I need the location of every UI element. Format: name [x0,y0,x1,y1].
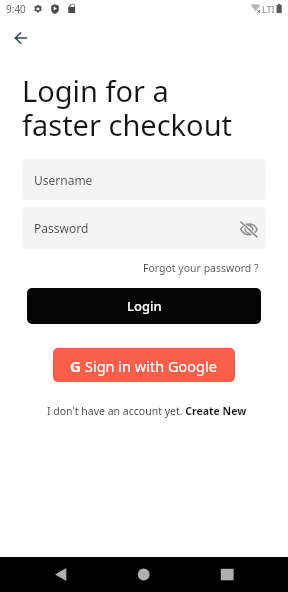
staticText: Login [127,297,162,315]
button[interactable]: Password [22,207,266,249]
staticText: Login for a faster checkout [22,71,233,144]
button[interactable]: Back [13,30,29,46]
button[interactable]: Show password [240,220,258,238]
button[interactable]: I don't have an account yet. Create New [47,404,247,418]
staticText: G [70,356,81,376]
staticText: LTI [262,3,275,15]
staticText: Sign in with Google [85,356,217,376]
staticText: I don't have an account yet. Create New [47,404,247,418]
staticText: Username [34,172,93,188]
button[interactable]: Forgot your password ? [143,261,259,275]
button[interactable]: Login [27,288,261,324]
button[interactable]: G [53,348,235,382]
staticText: Forgot your password ? [143,261,259,275]
button[interactable]: Username [22,159,266,200]
staticText: 9:40 [6,2,26,16]
staticText: Password [34,220,89,236]
